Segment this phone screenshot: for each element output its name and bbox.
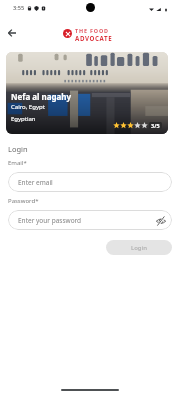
staticText: 3:55	[13, 4, 25, 12]
staticText: Login	[131, 244, 147, 252]
staticText: Enter email	[18, 178, 53, 187]
button[interactable]: Nefa al nagahy	[6, 52, 168, 134]
staticText: Email*	[8, 159, 27, 167]
button[interactable]: Show password	[155, 214, 167, 226]
button[interactable]: Enter your password	[8, 210, 172, 230]
staticText: Enter your password	[18, 216, 82, 225]
staticText: Cairo, Egypt	[11, 103, 45, 111]
staticText: THE FOOD	[75, 27, 109, 34]
staticText: ADVOCATE	[75, 34, 113, 42]
staticText: Login	[8, 144, 28, 154]
staticText: 3/5	[151, 122, 160, 129]
staticText: Password*	[8, 197, 39, 205]
button[interactable]: Enter email	[8, 172, 172, 192]
button[interactable]: Login	[106, 240, 172, 255]
staticText: Nefa al nagahy	[11, 91, 72, 102]
button[interactable]: Back	[4, 25, 20, 41]
staticText: Egyptian	[11, 115, 36, 123]
